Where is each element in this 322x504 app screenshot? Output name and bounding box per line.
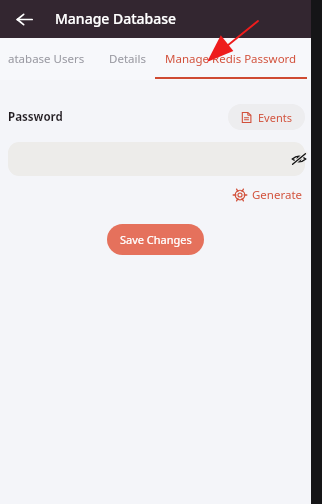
button[interactable]: Manage Redis Password bbox=[155, 38, 307, 80]
button[interactable] bbox=[8, 142, 305, 176]
button[interactable]: Details bbox=[99, 38, 155, 80]
button[interactable]: Generate bbox=[232, 184, 305, 206]
button[interactable]: atabase Users bbox=[0, 38, 99, 80]
button[interactable]: Toggle password visibility bbox=[286, 146, 312, 172]
staticText: Manage Database bbox=[55, 9, 177, 28]
button[interactable]: Events bbox=[228, 104, 305, 130]
staticText: Events bbox=[258, 110, 292, 125]
staticText: Save Changes bbox=[120, 232, 192, 247]
staticText: Details bbox=[109, 51, 146, 67]
staticText: Manage Redis Password bbox=[165, 51, 297, 67]
button[interactable]: Save Changes bbox=[107, 224, 204, 255]
button[interactable]: Back bbox=[7, 2, 41, 36]
staticText: Generate bbox=[252, 187, 303, 203]
staticText: atabase Users bbox=[8, 51, 85, 67]
staticText: Password bbox=[8, 109, 63, 125]
